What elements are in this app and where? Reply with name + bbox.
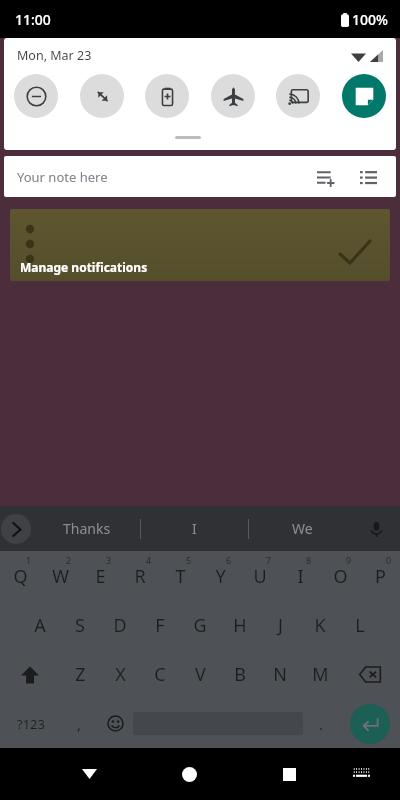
button[interactable]: I [280, 551, 320, 601]
staticText: T [175, 564, 186, 589]
button[interactable]: Z [60, 650, 100, 699]
button[interactable]: Back [66, 751, 112, 797]
staticText: H [233, 613, 247, 638]
staticText: G [193, 613, 207, 638]
staticText: U [253, 564, 267, 589]
button[interactable]: Backspace [340, 650, 400, 699]
staticText: Y [215, 564, 226, 589]
button[interactable]: O [320, 551, 360, 601]
staticText: , [77, 714, 82, 734]
staticText: 4 [146, 554, 152, 566]
staticText: Mon, Mar 23 [17, 47, 92, 64]
button[interactable]: H [220, 601, 260, 650]
button[interactable]: W [40, 551, 80, 601]
staticText: 2 [66, 554, 72, 566]
staticText: Your note here [17, 168, 108, 186]
button[interactable]: Shift [0, 650, 60, 699]
staticText: 7 [266, 554, 272, 566]
staticText: I [192, 519, 197, 538]
button[interactable]: U [240, 551, 280, 601]
staticText: R [134, 564, 146, 589]
staticText: J [278, 613, 283, 638]
staticText: K [314, 613, 326, 638]
button[interactable]: Y [200, 551, 240, 601]
staticText: B [234, 662, 246, 687]
staticText: V [195, 662, 206, 687]
button[interactable]: Add checklist item [310, 161, 342, 193]
button[interactable]: More options [1, 514, 31, 544]
button[interactable]: Thanks [34, 506, 140, 551]
button[interactable]: X [100, 650, 140, 699]
button[interactable]: A [20, 601, 60, 650]
staticText: 6 [226, 554, 232, 566]
staticText: D [113, 613, 127, 638]
staticText: N [273, 662, 287, 687]
button[interactable]: D [100, 601, 140, 650]
staticText: Z [75, 662, 86, 687]
staticText: E [95, 564, 106, 589]
button[interactable]: Recents [266, 751, 312, 797]
staticText: Manage notifications [20, 259, 148, 275]
staticText: W [52, 564, 69, 589]
button[interactable]: Switch keyboard [341, 754, 381, 794]
button[interactable]: M [300, 650, 340, 699]
staticText: 3 [106, 554, 112, 566]
button[interactable]: J [260, 601, 300, 650]
button[interactable]: Home [166, 751, 212, 797]
button[interactable]: Airplane mode [211, 74, 255, 118]
button[interactable]: Q [0, 551, 40, 601]
staticText: X [115, 662, 126, 687]
staticText: . [319, 714, 324, 734]
staticText: 1 [26, 554, 32, 566]
staticText: P [375, 564, 386, 589]
button[interactable]: L [340, 601, 380, 650]
staticText: Q [13, 564, 28, 589]
button[interactable]: Emoji [97, 699, 133, 748]
button[interactable]: Do not disturb [14, 74, 58, 118]
staticText: C [154, 662, 166, 687]
button[interactable]: Enter [350, 704, 390, 744]
staticText: 5 [186, 554, 192, 566]
button[interactable]: Cast screen [276, 74, 320, 118]
staticText: 100% [352, 10, 388, 29]
button[interactable]: Notes [342, 74, 386, 118]
staticText: ?123 [17, 715, 45, 733]
button[interactable]: R [120, 551, 160, 601]
button[interactable]: Voice input [362, 515, 390, 543]
button[interactable]: E [80, 551, 120, 601]
staticText: S [75, 613, 85, 638]
button[interactable]: F [140, 601, 180, 650]
button[interactable]: B [220, 650, 260, 699]
button[interactable]: G [180, 601, 220, 650]
staticText: A [34, 613, 46, 638]
button[interactable]: Battery saver [145, 74, 189, 118]
staticText: 11:00 [15, 10, 51, 29]
button[interactable]: We [249, 506, 356, 551]
button[interactable]: I [141, 506, 248, 551]
button[interactable]: K [300, 601, 340, 650]
staticText: F [155, 613, 165, 638]
button[interactable]: V [180, 650, 220, 699]
staticText: 0 [386, 554, 392, 566]
button[interactable]: Auto rotate [80, 74, 124, 118]
staticText: O [333, 564, 348, 589]
staticText: M [312, 662, 329, 687]
staticText: I [297, 564, 304, 589]
button[interactable]: ?123 [0, 699, 61, 748]
staticText: We [292, 519, 313, 538]
button[interactable]: C [140, 650, 180, 699]
staticText: 8 [306, 554, 312, 566]
staticText: 9 [346, 554, 352, 566]
staticText: Thanks [63, 519, 111, 538]
button[interactable]: Bulleted list [352, 161, 384, 193]
staticText: L [355, 613, 365, 638]
button[interactable]: P [360, 551, 400, 601]
button[interactable]: S [60, 601, 100, 650]
button[interactable]: T [160, 551, 200, 601]
button[interactable]: N [260, 650, 300, 699]
